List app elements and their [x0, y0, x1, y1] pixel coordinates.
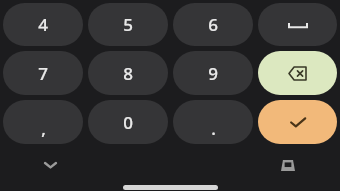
button[interactable]: Space [258, 3, 337, 46]
button[interactable]: 0 [88, 100, 168, 144]
staticText: 8 [123, 62, 133, 85]
staticText: 4 [38, 13, 48, 36]
staticText: 0 [123, 111, 133, 134]
button[interactable]: 7 [3, 51, 83, 95]
staticText: 7 [38, 62, 48, 85]
button[interactable]: Switch keyboard [272, 149, 304, 181]
button[interactable]: , [3, 100, 83, 144]
button[interactable]: 6 [173, 3, 253, 46]
staticText: 5 [123, 13, 133, 36]
button[interactable]: Backspace [258, 51, 337, 95]
staticText: . [211, 117, 216, 140]
staticText: 6 [208, 13, 218, 36]
button[interactable]: 9 [173, 51, 253, 95]
button[interactable]: 8 [88, 51, 168, 95]
button[interactable]: . [173, 100, 253, 144]
button[interactable]: 4 [3, 3, 83, 46]
button[interactable]: 5 [88, 3, 168, 46]
button[interactable]: Hide keyboard [34, 149, 66, 181]
staticText: , [41, 117, 46, 140]
button[interactable]: Enter [258, 100, 337, 144]
staticText: 9 [208, 62, 218, 85]
